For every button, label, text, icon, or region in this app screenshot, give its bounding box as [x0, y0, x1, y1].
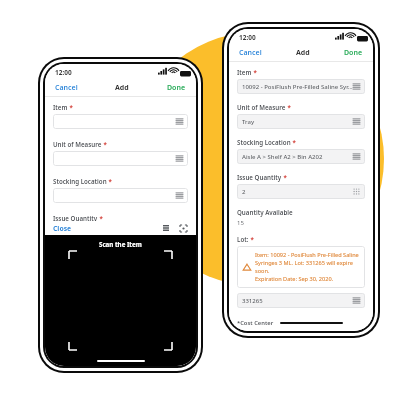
staticText: Item: 10092 - PosiFlush Pre-Filled Salin…	[255, 251, 359, 259]
staticText: Item	[53, 103, 68, 111]
staticText: *	[286, 103, 291, 111]
staticText: 15	[237, 219, 244, 227]
staticText: Add	[115, 83, 129, 93]
staticText: Quantity Available	[237, 208, 293, 216]
staticText: Expiration Date: Sep 30, 2020.	[255, 275, 334, 283]
button[interactable]: Aisle A > Shelf A2 > Bin A202	[237, 149, 365, 164]
button[interactable]: Cancel	[53, 81, 80, 95]
button[interactable]: Close	[52, 223, 73, 234]
staticText: Issue Quantity	[237, 173, 282, 181]
staticText: *	[102, 140, 107, 148]
staticText: Syringes 3 ML. Lot: 331265 will expire s…	[255, 259, 359, 275]
button[interactable]	[53, 188, 188, 203]
staticText: 12:00	[239, 33, 256, 42]
staticText: Cancel	[239, 48, 262, 58]
staticText: Done	[344, 48, 363, 58]
staticText: *	[68, 103, 73, 111]
staticText: Item	[237, 68, 252, 76]
staticText: Tray	[242, 118, 353, 126]
staticText: Close	[53, 224, 72, 233]
button[interactable]	[53, 151, 188, 166]
staticText: *	[291, 138, 296, 146]
button[interactable]: Scan barcode	[178, 223, 189, 234]
staticText: 331265	[242, 297, 353, 305]
button[interactable]: Manual entry	[161, 223, 171, 233]
staticText: Done	[167, 83, 186, 93]
staticText: *	[98, 214, 103, 221]
staticText: Stocking Location	[237, 138, 291, 146]
button[interactable]: Tray	[237, 114, 365, 129]
staticText: Unit of Measure	[53, 140, 102, 148]
button[interactable]: Done	[165, 81, 188, 95]
staticText: Stocking Location	[53, 177, 107, 185]
button[interactable]	[53, 114, 188, 129]
button[interactable]: 10092 - PosiFlush Pre-Filled Saline Syr…	[237, 79, 365, 94]
staticText: *	[282, 173, 287, 181]
staticText: Lot:	[237, 235, 249, 243]
staticText: *	[107, 177, 112, 185]
button[interactable]: 331265	[237, 293, 365, 308]
staticText: Add	[296, 48, 310, 58]
button[interactable]: 2	[237, 184, 365, 199]
staticText: Aisle A > Shelf A2 > Bin A202	[242, 153, 353, 161]
staticText: *	[249, 235, 254, 243]
button[interactable]: Done	[342, 46, 365, 60]
staticText: 12:00	[55, 68, 72, 77]
staticText: 2	[242, 188, 353, 196]
staticText: Unit of Measure	[237, 103, 286, 111]
staticText: Cancel	[55, 83, 78, 93]
staticText: *	[252, 68, 257, 76]
button[interactable]: Cancel	[237, 46, 264, 60]
staticText: *Cost Center	[237, 319, 274, 327]
staticText: Issue Quantity	[53, 214, 98, 221]
staticText: 10092 - PosiFlush Pre-Filled Saline Syr…	[242, 83, 353, 91]
staticText: Scan the Item	[99, 240, 142, 248]
